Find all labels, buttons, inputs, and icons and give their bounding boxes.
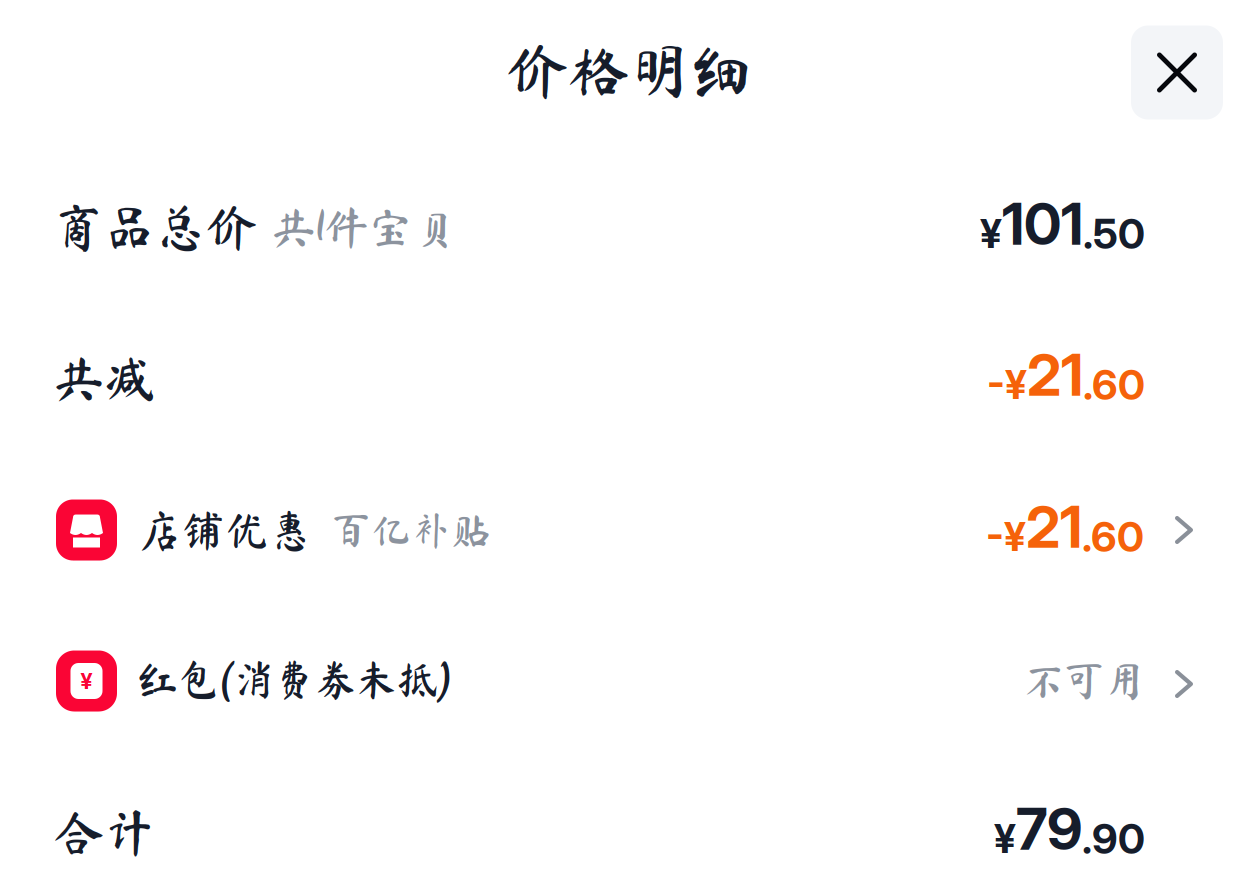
button[interactable]: Close xyxy=(1131,25,1223,119)
staticText: ¥ xyxy=(1005,360,1027,409)
button[interactable]: 合计 xyxy=(0,755,1258,885)
staticText: 101 xyxy=(1002,189,1083,259)
staticText: 店铺优惠 xyxy=(137,508,313,552)
staticText: 不可用 xyxy=(1024,661,1144,701)
staticText: ¥ xyxy=(1004,512,1026,561)
staticText: .50 xyxy=(1083,209,1145,259)
staticText: 合计 xyxy=(53,807,155,857)
staticText: 红包(消费券未抵) xyxy=(137,658,452,700)
staticText: 共1件宝贝 xyxy=(271,205,456,249)
staticText: - xyxy=(986,509,1004,558)
button[interactable]: 共减 xyxy=(0,305,1258,445)
staticText: 共减 xyxy=(53,353,155,403)
button[interactable]: 店铺优惠 xyxy=(0,455,1258,595)
staticText: ¥ xyxy=(994,814,1016,863)
staticText: 价格明细 xyxy=(507,40,751,101)
button[interactable]: ¥ xyxy=(0,605,1258,745)
staticText: ¥ xyxy=(80,668,92,694)
staticText: 商品总价 xyxy=(53,202,257,252)
button[interactable]: 商品总价 xyxy=(0,155,1258,295)
staticText: .60 xyxy=(1083,360,1145,410)
staticText: - xyxy=(987,357,1005,406)
staticText: 21 xyxy=(1026,492,1082,562)
staticText: 21 xyxy=(1027,340,1083,410)
staticText: .90 xyxy=(1082,814,1145,864)
staticText: 79 xyxy=(1016,794,1082,864)
staticText: .60 xyxy=(1082,512,1144,562)
staticText: 百亿补贴 xyxy=(331,510,491,550)
staticText: ¥ xyxy=(980,209,1002,258)
